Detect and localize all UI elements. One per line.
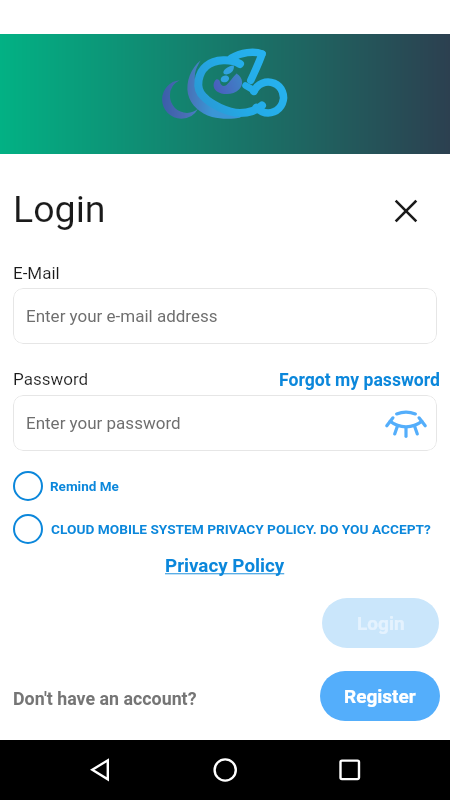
button[interactable]: Show password xyxy=(386,400,426,440)
button[interactable]: Remind Me xyxy=(13,471,119,501)
button[interactable]: Back xyxy=(70,740,130,800)
button[interactable]: Enter your e-mail address xyxy=(13,288,437,344)
staticText: Login xyxy=(13,187,106,231)
staticText: Forgot my password xyxy=(279,370,440,391)
button[interactable]: Recent apps xyxy=(320,740,380,800)
staticText: CLOUD MOBILE SYSTEM PRIVACY POLICY. DO Y… xyxy=(51,521,431,537)
button[interactable]: Register xyxy=(320,671,440,721)
staticText: Don't have an account? xyxy=(13,688,197,709)
button[interactable]: Forgot my password xyxy=(279,370,440,391)
button[interactable]: Login xyxy=(322,598,439,648)
button[interactable]: Close xyxy=(389,194,423,228)
staticText: Enter your e-mail address xyxy=(26,306,218,326)
staticText: Password xyxy=(13,369,89,389)
button[interactable]: Privacy Policy xyxy=(165,555,285,577)
staticText: E-Mail xyxy=(13,263,60,283)
button[interactable]: Enter your password xyxy=(13,395,437,451)
staticText: Enter your password xyxy=(26,413,181,433)
button[interactable]: Home xyxy=(195,740,255,800)
staticText: Remind Me xyxy=(50,478,119,494)
button[interactable]: CLOUD MOBILE SYSTEM PRIVACY POLICY. DO Y… xyxy=(13,514,431,544)
staticText: Login xyxy=(357,612,405,634)
staticText: Privacy Policy xyxy=(165,555,285,577)
staticText: Register xyxy=(344,685,416,707)
